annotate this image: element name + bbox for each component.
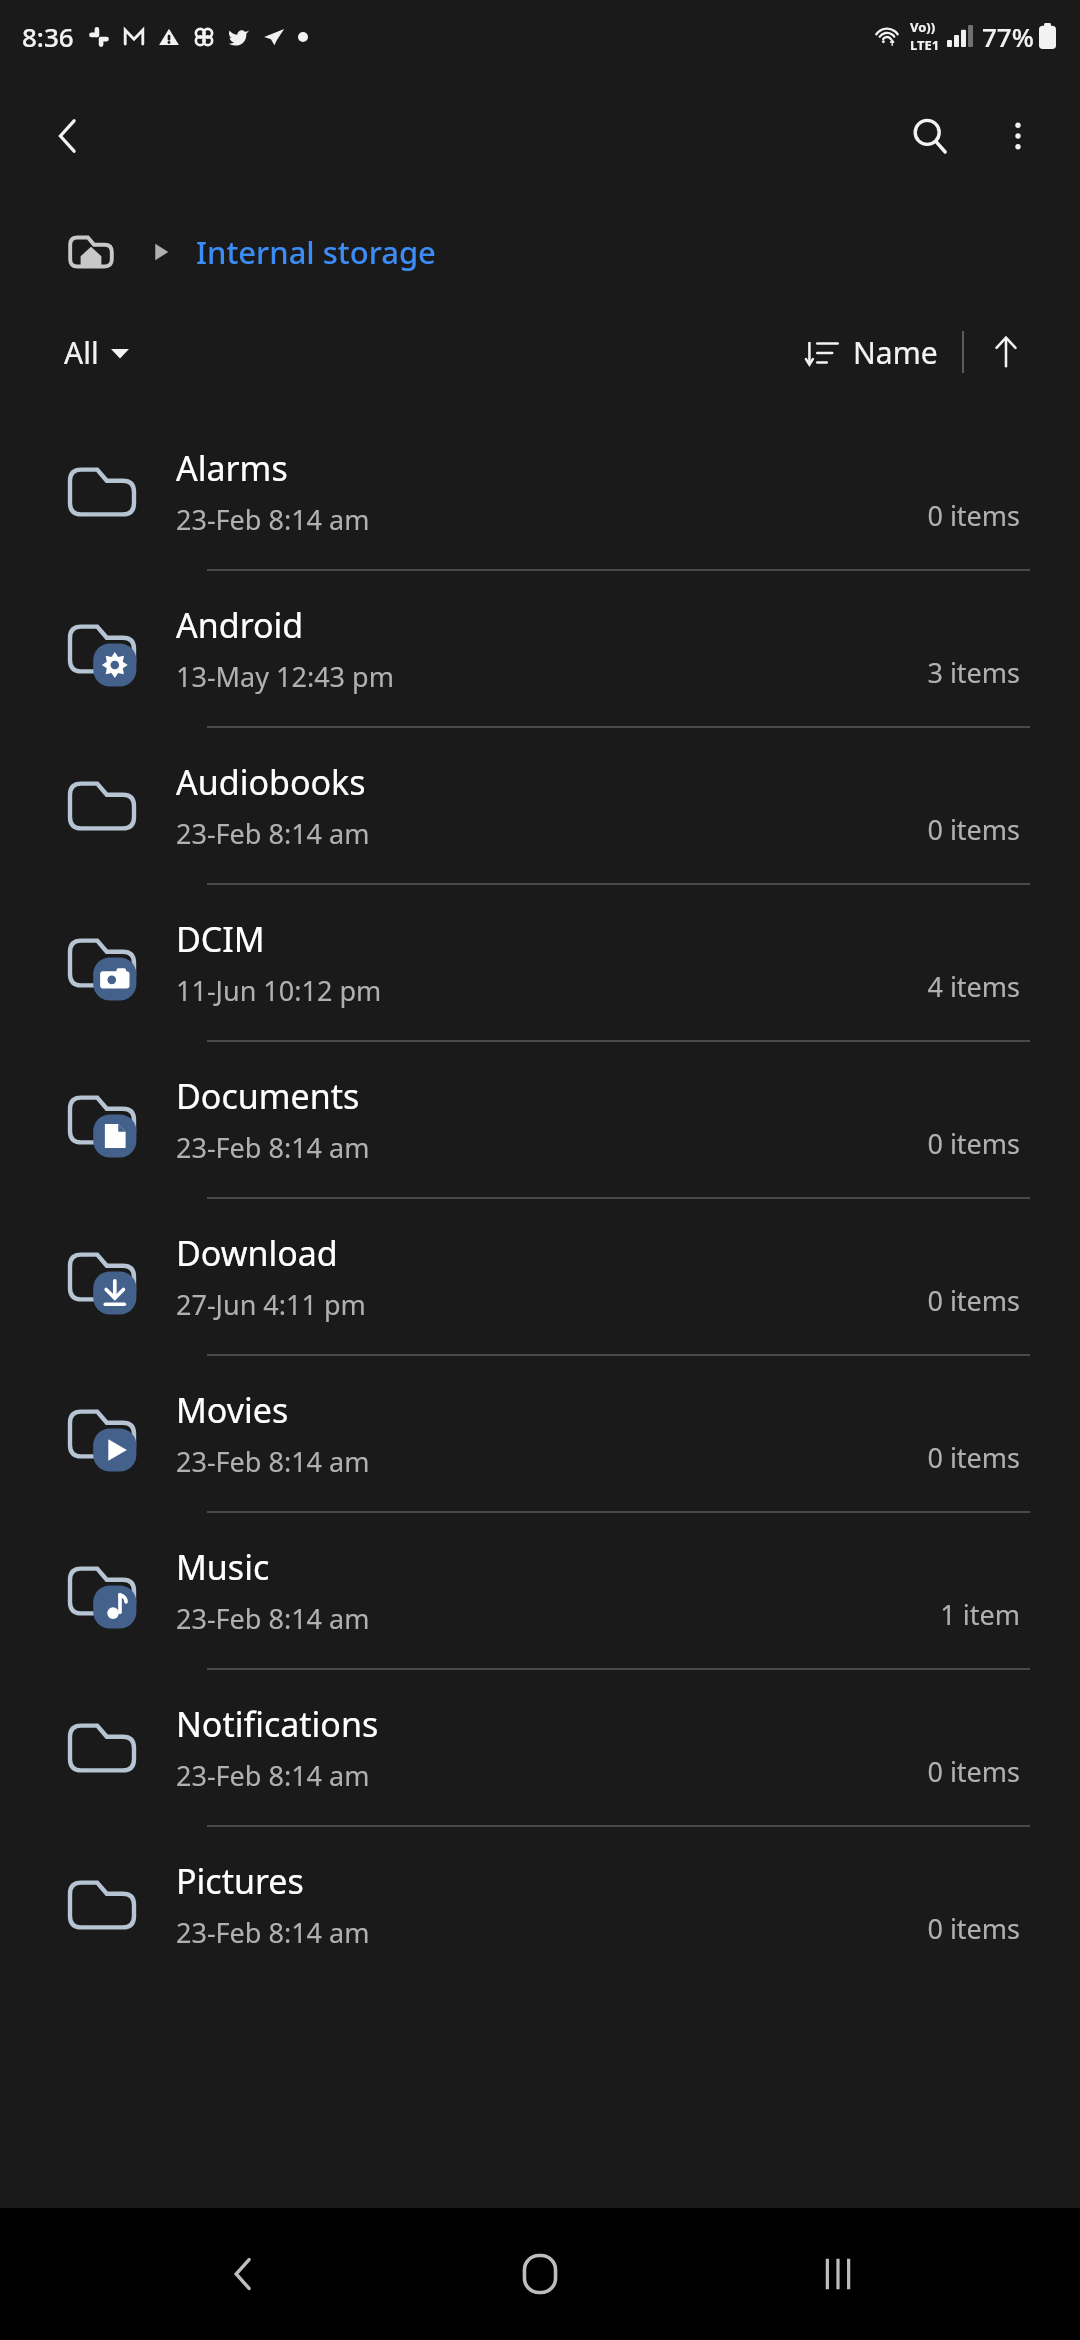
button[interactable]: Back [188,2219,298,2329]
staticText: 23-Feb 8:14 am [176,1757,370,1794]
staticText: DCIM [176,916,265,962]
staticText: All [64,332,99,373]
staticText: 23-Feb 8:14 am [176,1443,370,1480]
staticText: 4 items [927,968,1020,1005]
staticText: 23-Feb 8:14 am [176,1600,370,1637]
button[interactable]: Alarms [0,414,1080,569]
staticText: 23-Feb 8:14 am [176,815,370,852]
staticText: Pictures [176,1858,304,1904]
button[interactable]: Internal storage [196,231,436,273]
button[interactable]: Documents [0,1042,1080,1197]
button[interactable]: Download [0,1199,1080,1354]
staticText: 3 items [927,654,1020,691]
button[interactable]: Android [0,571,1080,726]
button[interactable]: Home storage [62,223,120,281]
staticText: Notifications [176,1701,379,1747]
staticText: 8:36 [22,19,74,54]
staticText: Documents [176,1073,360,1119]
button[interactable]: Music [0,1513,1080,1668]
staticText: Music [176,1544,270,1590]
button[interactable]: Audiobooks [0,728,1080,883]
button[interactable]: Recent apps [783,2219,893,2329]
staticText: Audiobooks [176,759,366,805]
staticText: 23-Feb 8:14 am [176,501,370,538]
staticText: Alarms [176,445,288,491]
staticText: Internal storage [196,231,436,273]
button[interactable]: Pictures [0,1827,1080,1982]
button[interactable]: Back [24,92,112,180]
staticText: 23-Feb 8:14 am [176,1129,370,1166]
staticText: LTE1 [910,36,940,54]
button[interactable]: Notifications [0,1670,1080,1825]
button[interactable]: Name [799,326,944,379]
staticText: 0 items [927,497,1020,534]
button[interactable]: Movies [0,1356,1080,1511]
staticText: 0 items [927,811,1020,848]
staticText: 0 items [927,1910,1020,1947]
staticText: 23-Feb 8:14 am [176,1914,370,1951]
staticText: 77% [982,19,1034,54]
staticText: Movies [176,1387,289,1433]
staticText: 1 item [940,1596,1020,1633]
staticText: 0 items [927,1282,1020,1319]
staticText: 0 items [927,1125,1020,1162]
staticText: 11-Jun 10:12 pm [176,972,382,1009]
staticText: Name [853,332,938,373]
staticText: Vo)) [910,18,936,36]
button[interactable]: Sort ascending [974,320,1038,384]
button[interactable]: Search [886,92,974,180]
staticText: 0 items [927,1439,1020,1476]
staticText: 13-May 12:43 pm [176,658,394,695]
staticText: Download [176,1230,338,1276]
button[interactable]: More options [974,92,1062,180]
button[interactable]: All [58,326,135,379]
button[interactable]: Home [485,2219,595,2329]
staticText: Android [176,602,304,648]
staticText: 27-Jun 4:11 pm [176,1286,366,1323]
staticText: 0 items [927,1753,1020,1790]
button[interactable]: DCIM [0,885,1080,1040]
